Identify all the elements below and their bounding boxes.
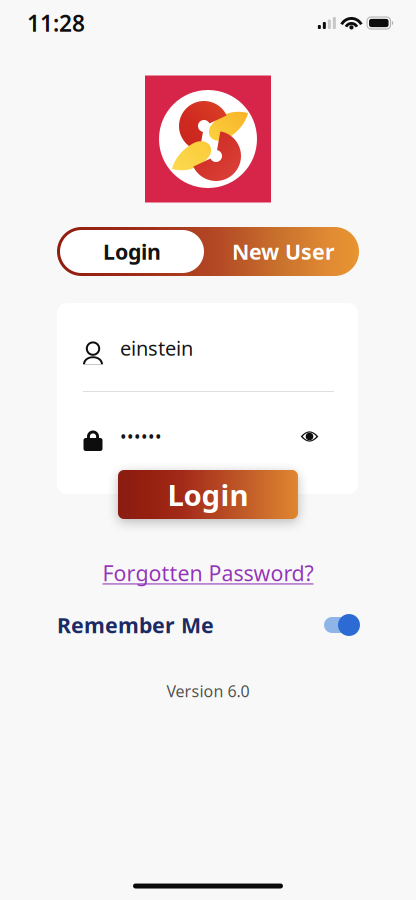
button[interactable]: Forgotten Password? [102,559,313,587]
staticText: Login [167,475,248,514]
staticText: Login [103,237,161,266]
button[interactable]: New User [208,230,358,273]
staticText: Version 6.0 [166,680,249,702]
button[interactable]: Remember Me [321,614,357,636]
button[interactable]: Login [118,470,298,519]
staticText: Remember Me [57,611,214,639]
staticText: Forgotten Password? [102,559,313,587]
button[interactable]: Show password [294,423,324,449]
staticText: New User [232,237,335,266]
staticText: einstein [120,335,193,361]
staticText: •••••• [120,424,162,447]
button[interactable]: Login [60,230,204,273]
staticText: 11:28 [27,8,85,38]
